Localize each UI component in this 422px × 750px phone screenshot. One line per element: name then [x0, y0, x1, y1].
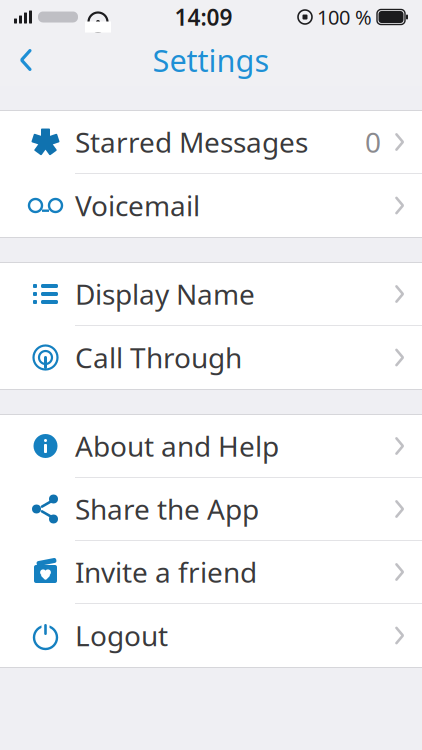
staticText: Display Name: [75, 275, 255, 313]
staticText: Share the App: [75, 490, 259, 528]
staticText: 0: [365, 123, 381, 161]
button[interactable]: Starred Messages: [0, 111, 422, 174]
staticText: Call Through: [75, 339, 242, 376]
staticText: Settings: [152, 40, 269, 80]
staticText: Logout: [75, 617, 168, 654]
button[interactable]: Logout: [0, 604, 422, 667]
staticText: Starred Messages: [75, 123, 308, 161]
staticText: About and Help: [75, 427, 279, 465]
button[interactable]: Call Through: [0, 326, 422, 389]
staticText: Invite a friend: [75, 553, 257, 591]
staticText: 14:09: [174, 2, 232, 32]
button[interactable]: Display Name: [0, 263, 422, 326]
button[interactable]: Back: [4, 38, 48, 82]
staticText: 100 %: [317, 4, 372, 30]
button[interactable]: Voicemail: [0, 174, 422, 237]
button[interactable]: Share the App: [0, 478, 422, 541]
button[interactable]: About and Help: [0, 415, 422, 478]
button[interactable]: Invite a friend: [0, 541, 422, 604]
staticText: Voicemail: [75, 187, 200, 224]
